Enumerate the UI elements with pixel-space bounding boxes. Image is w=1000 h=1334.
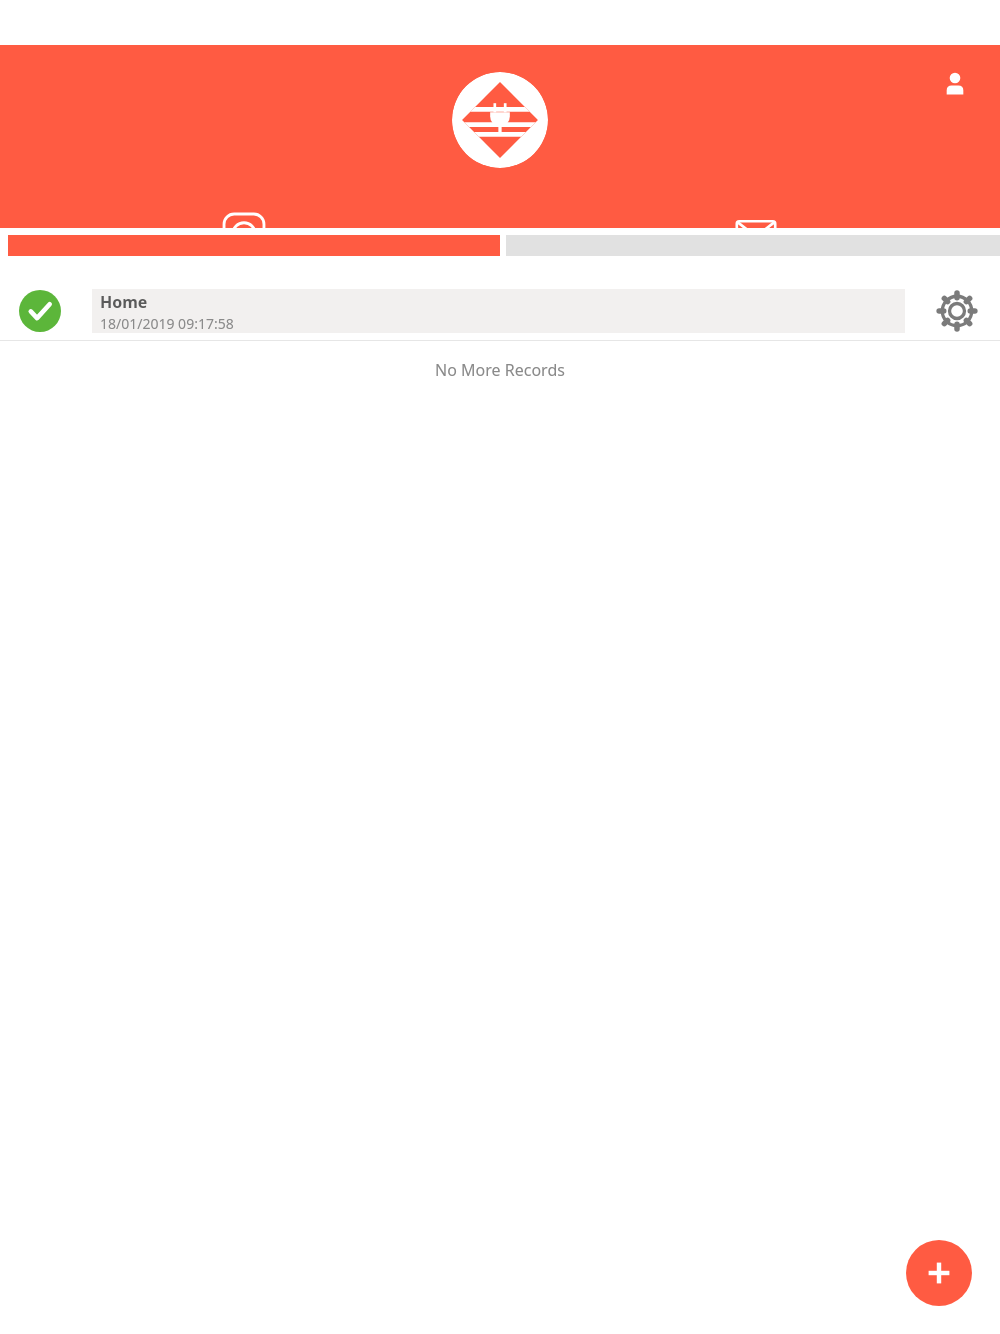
button[interactable]: Home [0,282,1000,340]
button[interactable]: Account [932,61,978,107]
button[interactable]: Messages [723,201,789,267]
button[interactable]: Add [906,1240,972,1306]
button[interactable]: App logo [452,72,548,168]
button[interactable]: Settings [928,282,986,340]
button[interactable]: Devices [211,201,277,267]
staticText: Home [100,291,148,313]
staticText: 18/01/2019 09:17:58 [100,314,234,333]
staticText: No More Records [0,359,1000,381]
